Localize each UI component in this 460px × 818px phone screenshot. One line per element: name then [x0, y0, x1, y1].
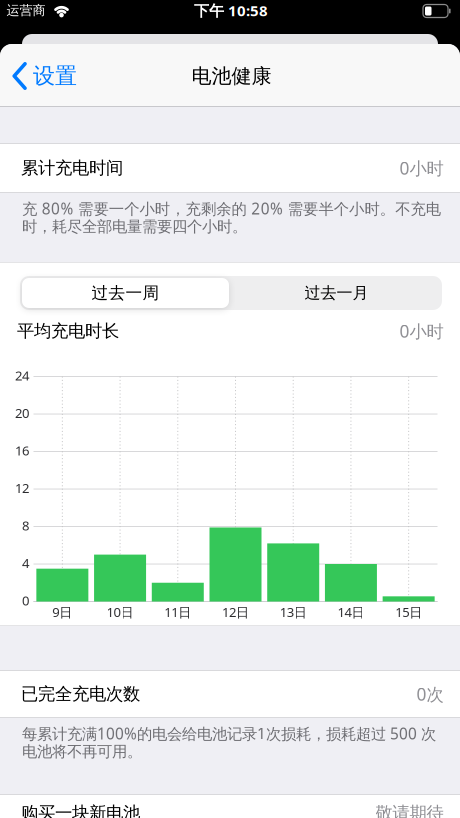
staticText: 8: [22, 517, 29, 534]
staticText: 0小时: [399, 319, 443, 343]
staticText: 敬请期待: [375, 802, 443, 818]
staticText: 运营商: [6, 2, 45, 19]
staticText: 充 80% 需要一个小时，充剩余的 20% 需要半个小时。不充电: [22, 198, 441, 219]
staticText: 0小时: [399, 156, 443, 180]
staticText: 10日: [107, 603, 134, 621]
staticText: 平均充电时长: [17, 320, 119, 342]
staticText: 购买一块新电池: [21, 802, 140, 818]
staticText: 14日: [337, 603, 364, 621]
staticText: 12日: [222, 603, 249, 621]
staticText: 12: [15, 479, 29, 497]
staticText: 下午 10:58: [194, 0, 268, 21]
button[interactable]: 过去一周: [22, 278, 229, 308]
staticText: 20: [15, 404, 29, 422]
staticText: 4: [22, 554, 29, 572]
staticText: 时，耗尽全部电量需要四个小时。: [22, 217, 247, 236]
staticText: 电池健康: [191, 63, 271, 89]
staticText: 每累计充满100%的电会给电池记录1次损耗，损耗超过 500 次: [22, 723, 436, 744]
staticText: 0次: [416, 682, 443, 706]
staticText: 0: [22, 592, 29, 609]
staticText: 24: [15, 367, 29, 384]
button[interactable]: 购买一块新电池: [0, 795, 460, 818]
staticText: 累计充电时间: [21, 157, 123, 179]
staticText: 15日: [395, 603, 422, 621]
staticText: 已完全充电次数: [21, 683, 140, 705]
staticText: 电池将不再可用。: [22, 742, 142, 761]
staticText: 设置: [33, 62, 77, 90]
button[interactable]: 过去一月: [233, 278, 440, 308]
staticText: 16: [15, 442, 29, 459]
button[interactable]: 设置: [0, 44, 77, 106]
staticText: 过去一月: [304, 283, 368, 303]
staticText: 9日: [52, 603, 72, 621]
staticText: 11日: [164, 603, 191, 621]
staticText: 13日: [280, 603, 307, 621]
staticText: 过去一周: [91, 282, 159, 303]
